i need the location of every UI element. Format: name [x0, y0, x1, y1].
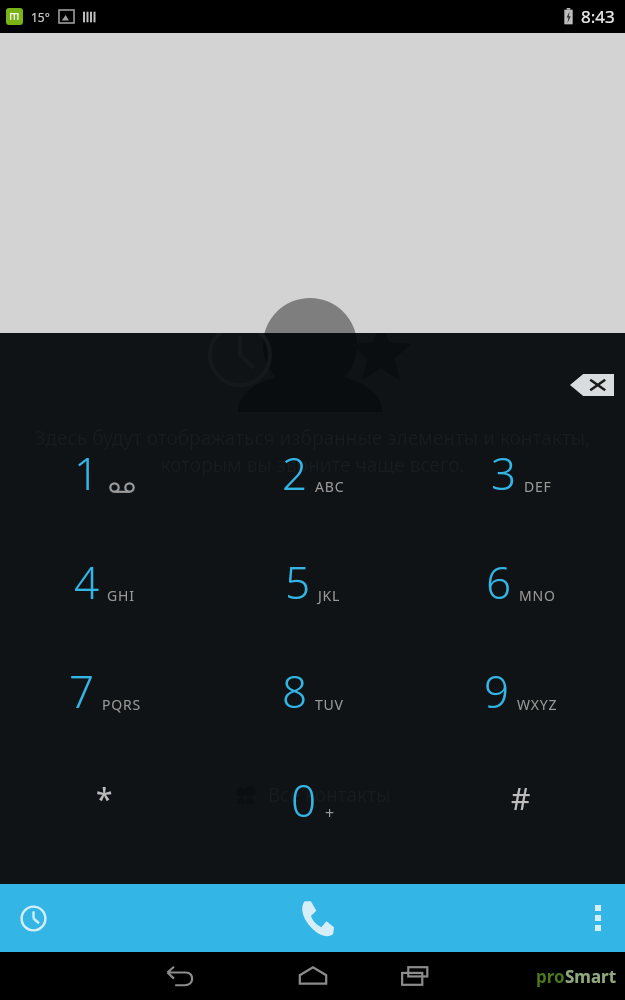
staticText: 3: [491, 443, 517, 503]
button[interactable]: Call history: [0, 884, 66, 952]
staticText: Все контакты: [268, 782, 391, 808]
button[interactable]: 0: [209, 770, 417, 879]
staticText: Smart: [565, 965, 617, 988]
button[interactable]: Backspace: [566, 371, 618, 399]
staticText: +: [325, 802, 335, 824]
staticText: 8:43: [581, 5, 615, 28]
staticText: 8: [282, 661, 308, 721]
staticText: #: [511, 778, 531, 819]
staticText: JKL: [318, 586, 341, 605]
button[interactable]: Recent apps: [385, 952, 445, 1000]
staticText: 2: [282, 443, 308, 503]
button[interactable]: 5: [209, 552, 417, 661]
staticText: 6: [486, 552, 512, 612]
staticText: MNO: [519, 586, 556, 605]
button[interactable]: Home: [283, 952, 343, 1000]
staticText: 5: [285, 552, 311, 612]
button[interactable]: 9: [417, 661, 625, 770]
staticText: 1: [74, 443, 100, 503]
button[interactable]: 2: [209, 443, 417, 552]
staticText: WXYZ: [517, 695, 558, 714]
button[interactable]: 6: [417, 552, 625, 661]
button[interactable]: Dialer: [270, 884, 356, 952]
staticText: *: [96, 778, 113, 819]
staticText: GHI: [107, 586, 135, 605]
button[interactable]: 7: [0, 661, 209, 770]
button[interactable]: Back: [150, 952, 210, 1000]
button[interactable]: 3: [417, 443, 625, 552]
staticText: 15°: [31, 9, 50, 25]
staticText: 7: [69, 661, 95, 721]
button[interactable]: 1: [0, 443, 209, 552]
staticText: ABC: [315, 477, 345, 496]
staticText: 0: [291, 770, 317, 830]
staticText: pro: [536, 965, 565, 988]
button[interactable]: #: [417, 770, 625, 879]
staticText: DEF: [524, 477, 552, 496]
staticText: TUV: [315, 695, 344, 714]
staticText: Здесь будут отображаться избранные элеме…: [26, 425, 599, 478]
staticText: 9: [484, 661, 510, 721]
button[interactable]: 8: [209, 661, 417, 770]
staticText: PQRS: [102, 695, 141, 714]
staticText: 4: [74, 552, 100, 612]
button[interactable]: More options: [571, 884, 625, 952]
button[interactable]: 4: [0, 552, 209, 661]
button[interactable]: *: [0, 770, 209, 879]
